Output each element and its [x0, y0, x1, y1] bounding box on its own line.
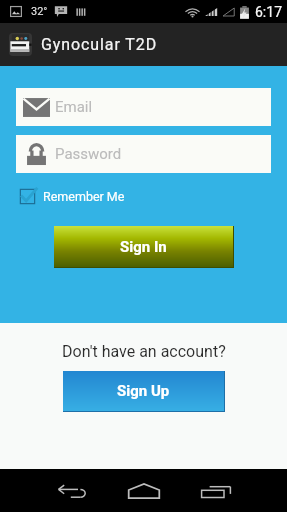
button[interactable]: Password	[16, 135, 271, 173]
staticText: Sign In	[120, 238, 167, 256]
button[interactable]: Sign Up	[63, 371, 224, 411]
staticText: 6:17	[255, 4, 282, 20]
button[interactable]: Home	[108, 471, 180, 511]
button[interactable]: Email	[16, 88, 271, 126]
staticText: Gynocular T2D	[41, 35, 158, 54]
button[interactable]: Sign In	[54, 226, 233, 267]
staticText: Remember Me	[43, 189, 125, 204]
staticText: Password	[55, 145, 122, 163]
button[interactable]: Back	[36, 471, 108, 511]
staticText: 32°	[31, 5, 48, 18]
button[interactable]: Remember Me	[19, 188, 125, 205]
staticText: Email	[55, 98, 93, 116]
staticText: Sign Up	[117, 382, 170, 400]
staticText: Don't have an account?	[62, 342, 226, 361]
button[interactable]: Recent apps	[180, 471, 252, 511]
